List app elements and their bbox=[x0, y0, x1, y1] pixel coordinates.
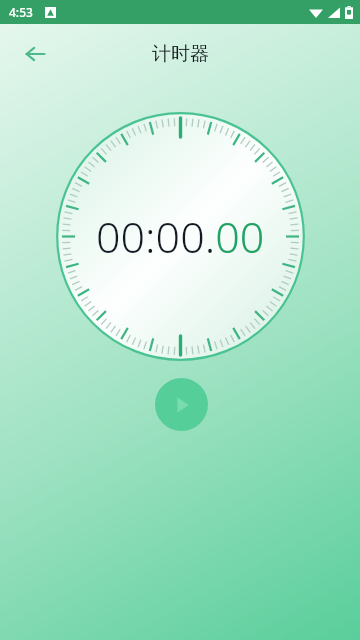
staticText: 4:53 bbox=[9, 4, 33, 20]
staticText: 00:00.00 bbox=[96, 207, 265, 266]
button[interactable]: Back bbox=[13, 32, 57, 76]
button[interactable]: Start bbox=[155, 378, 208, 431]
staticText: 计时器 bbox=[152, 42, 209, 66]
